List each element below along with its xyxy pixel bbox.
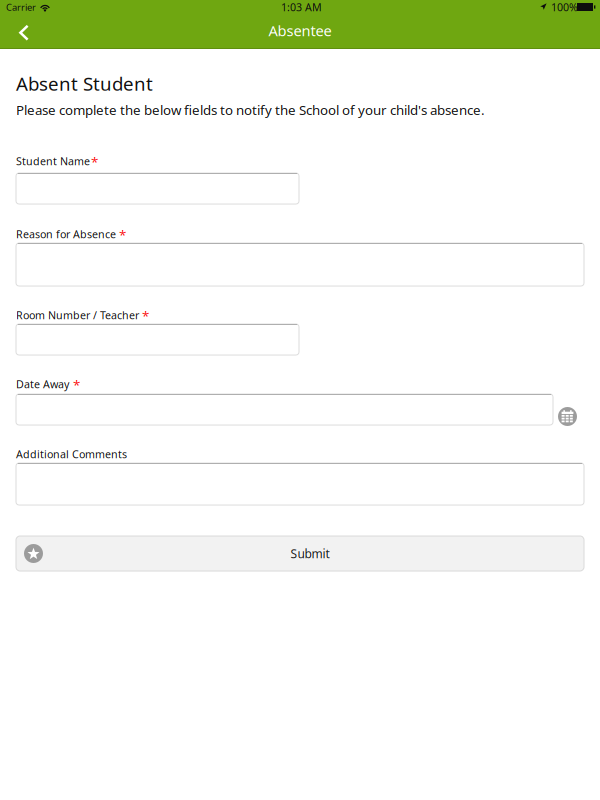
staticText: Absent Student bbox=[16, 71, 153, 96]
staticText: Additional Comments bbox=[16, 447, 127, 461]
staticText: 100% bbox=[551, 0, 578, 14]
staticText: Please complete the below fields to noti… bbox=[16, 101, 485, 119]
staticText: * bbox=[91, 153, 98, 171]
button[interactable]: Submit bbox=[16, 536, 584, 571]
staticText: 1:03 AM bbox=[281, 0, 322, 14]
staticText: Date Away bbox=[16, 377, 69, 391]
button[interactable]: Pick a date bbox=[558, 407, 577, 426]
staticText: Room Number / Teacher bbox=[16, 308, 139, 322]
staticText: * bbox=[119, 226, 126, 244]
staticText: Reason for Absence bbox=[16, 227, 116, 241]
staticText: Carrier bbox=[6, 1, 36, 13]
button[interactable]: Back bbox=[0, 18, 45, 49]
staticText: Submit bbox=[290, 545, 329, 561]
staticText: * bbox=[73, 376, 80, 394]
staticText: * bbox=[142, 307, 149, 325]
staticText: Absentee bbox=[268, 21, 331, 40]
staticText: Student Name bbox=[16, 154, 90, 168]
